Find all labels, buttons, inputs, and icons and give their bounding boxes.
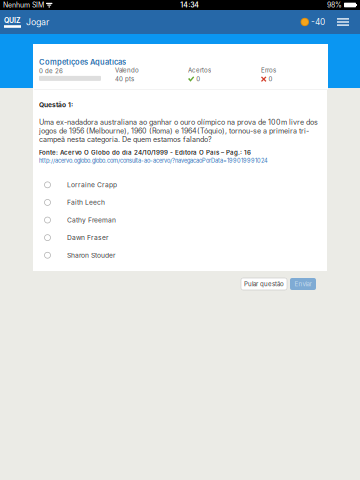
button[interactable]: Enviar [290, 278, 316, 290]
staticText: Pular questão [244, 280, 284, 288]
staticText: Acertos [188, 66, 211, 74]
staticText: Enviar [294, 280, 311, 288]
button[interactable]: Cathy Freeman [34, 211, 328, 229]
staticText: Uma ex-nadadora australiana ao ganhar o … [39, 118, 318, 144]
staticText: Erros [261, 66, 276, 74]
staticText: -40 [311, 17, 325, 27]
staticText: Valendo [115, 66, 139, 74]
staticText: 0 de 26 [39, 67, 63, 75]
staticText: QUIZ [4, 16, 21, 25]
staticText: Nenhum SIM [3, 1, 44, 9]
button[interactable]: Quiz [0, 10, 23, 34]
staticText: 14:34 [180, 1, 199, 9]
button[interactable]: Menu [328, 10, 360, 34]
button[interactable]: Pular questão [241, 278, 287, 290]
staticText: Faith Leech [67, 198, 105, 206]
staticText: Questão 1: [39, 101, 73, 109]
staticText: Dawn Fraser [67, 234, 109, 242]
staticText: Lorraine Crapp [67, 181, 117, 189]
button[interactable]: Moedas: -40 [298, 10, 328, 34]
staticText: 0 [196, 75, 200, 83]
staticText: 98% [327, 1, 342, 9]
staticText: Sharon Stouder [67, 251, 116, 259]
button[interactable]: Sharon Stouder [34, 246, 328, 264]
staticText: Cathy Freeman [67, 216, 116, 224]
staticText: Fonte: Acervo O Globo do dia 24/10/1999 … [39, 149, 251, 156]
staticText: http://acervo.oglobo.globo.com/consulta-… [39, 157, 268, 164]
button[interactable]: Lorraine Crapp [34, 176, 328, 194]
staticText: Jogar [26, 17, 49, 27]
button[interactable]: Dawn Fraser [34, 229, 328, 246]
button[interactable]: Faith Leech [34, 194, 328, 211]
staticText: Competições Aquáticas [39, 57, 126, 67]
staticText: 40 pts [115, 75, 134, 83]
staticText: 0 [268, 75, 272, 83]
